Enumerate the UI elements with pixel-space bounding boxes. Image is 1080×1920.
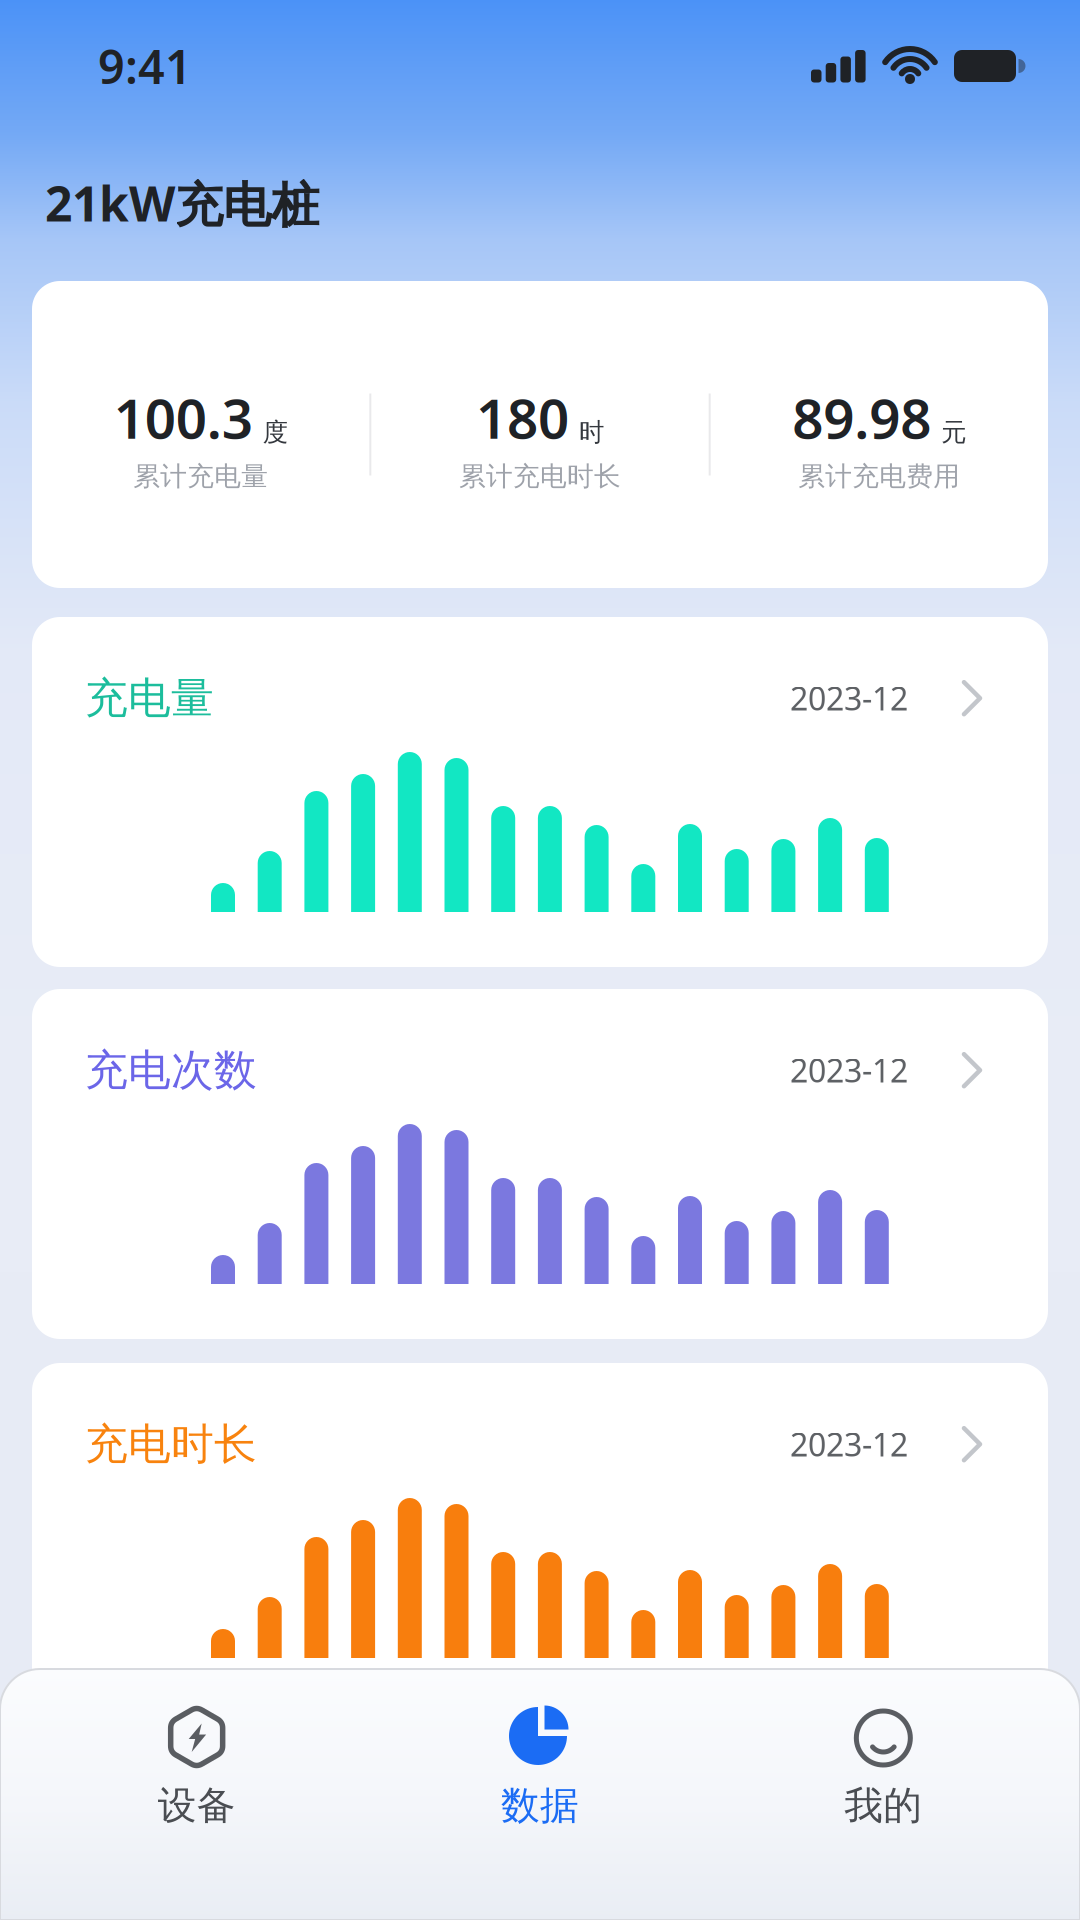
staticText: 充电时长 [85, 1418, 257, 1470]
staticText: 100.3 [114, 381, 253, 454]
button[interactable]: 数据 [368, 1705, 712, 1829]
button[interactable]: 2023-12 [790, 1049, 982, 1091]
staticText: 充电量 [85, 672, 214, 724]
staticText: 180 [476, 381, 569, 454]
staticText: 2023-12 [790, 677, 908, 719]
staticText: 累计充电时长 [459, 460, 621, 493]
staticText: 数据 [501, 1782, 579, 1829]
button[interactable]: 2023-12 [790, 677, 982, 719]
button[interactable]: 2023-12 [790, 1423, 982, 1465]
staticText: 充电次数 [85, 1044, 257, 1096]
button[interactable]: 设备 [25, 1705, 368, 1829]
staticText: 元 [941, 417, 966, 448]
staticText: 累计充电量 [133, 460, 268, 493]
staticText: 89.98 [792, 381, 931, 454]
button[interactable]: 我的 [712, 1705, 1055, 1829]
staticText: 9:41 [98, 35, 192, 97]
staticText: 2023-12 [790, 1049, 908, 1091]
staticText: 我的 [844, 1782, 922, 1829]
staticText: 21kW充电桩 [45, 171, 319, 235]
staticText: 时 [579, 417, 604, 448]
staticText: 2023-12 [790, 1423, 908, 1465]
staticText: 设备 [158, 1782, 236, 1829]
staticText: 累计充电费用 [798, 460, 960, 493]
staticText: 度 [263, 417, 288, 448]
